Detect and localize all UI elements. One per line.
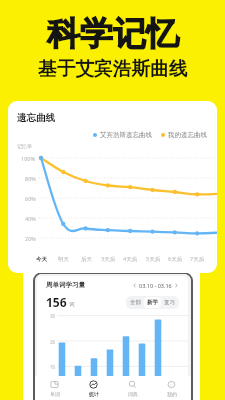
staticText: 明天 <box>58 256 69 263</box>
staticText: 单词 <box>50 391 60 397</box>
staticText: 100% <box>21 155 36 162</box>
staticText: 科学记忆 <box>47 13 179 55</box>
staticText: 10 <box>50 364 56 370</box>
staticText: 基于艾宾浩斯曲线 <box>38 57 188 80</box>
staticText: 20 <box>50 339 56 345</box>
button[interactable]: 统计 <box>74 376 113 400</box>
staticText: 后天 <box>81 256 92 263</box>
staticText: 统计 <box>89 391 99 397</box>
staticText: 20% <box>25 235 36 242</box>
button[interactable]: 词典 <box>113 376 152 400</box>
button[interactable]: 新学 <box>144 297 161 308</box>
staticText: 复习 <box>164 299 175 306</box>
staticText: 4天后 <box>123 255 138 263</box>
staticText: 30 <box>50 313 56 319</box>
staticText: 03.10 - 03.16 <box>139 282 172 289</box>
staticText: 词 <box>69 301 75 308</box>
staticText: 今天 <box>36 256 47 263</box>
button[interactable]: 03.10 - 03.16 <box>132 282 179 289</box>
button[interactable]: 全部 <box>127 297 144 308</box>
staticText: 艾宾浩斯遗忘曲线 <box>100 131 152 139</box>
staticText: 遗忘曲线 <box>17 112 55 124</box>
staticText: 词典 <box>128 391 138 397</box>
staticText: 我的遗忘曲线 <box>168 131 207 139</box>
staticText: 记忆率 <box>17 143 32 149</box>
staticText: 6天后 <box>168 255 183 263</box>
staticText: 周单词学习量 <box>46 281 85 289</box>
staticText: 60% <box>25 195 36 202</box>
staticText: 156 <box>46 294 67 310</box>
staticText: 3天后 <box>101 255 116 263</box>
staticText: 7天后 <box>190 255 205 263</box>
button[interactable]: 复习 <box>161 297 178 308</box>
staticText: 新学 <box>147 299 158 306</box>
staticText: 我的 <box>167 391 177 397</box>
staticText: 80% <box>25 175 36 182</box>
staticText: 40% <box>25 215 36 222</box>
button[interactable]: 单词 <box>35 376 74 400</box>
button[interactable]: 我的 <box>152 376 191 400</box>
staticText: 全部 <box>130 299 141 306</box>
staticText: 5天后 <box>146 255 161 263</box>
